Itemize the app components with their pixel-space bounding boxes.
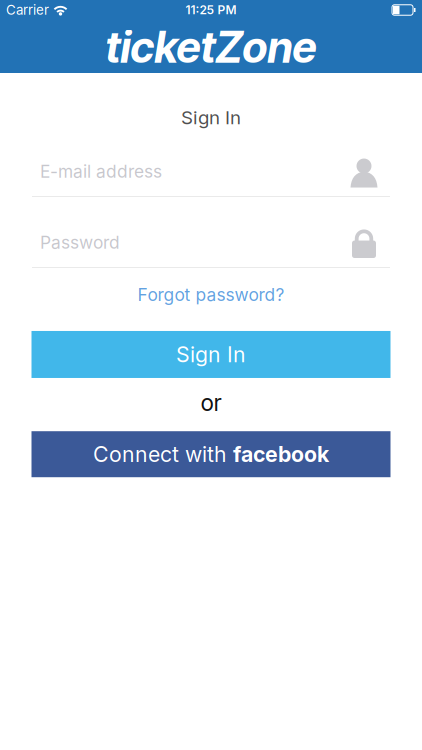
staticText: Sign In [181, 106, 241, 128]
staticText: Carrier [6, 2, 49, 18]
button[interactable]: Password [0, 228, 422, 257]
button[interactable]: Sign In [31, 331, 390, 378]
button[interactable]: Connect with facebook [31, 431, 390, 477]
staticText: Password [40, 232, 120, 253]
button[interactable]: E-mail address [0, 157, 422, 186]
staticText: Forgot password? [137, 284, 284, 305]
staticText: E-mail address [40, 161, 162, 182]
staticText: Sign In [176, 342, 246, 367]
staticText: 11:25 PM [185, 3, 236, 17]
staticText: Connect with facebook [93, 442, 329, 467]
staticText: ticketZone [105, 21, 316, 73]
button[interactable]: Forgot password? [137, 284, 284, 305]
staticText: or [200, 389, 221, 416]
